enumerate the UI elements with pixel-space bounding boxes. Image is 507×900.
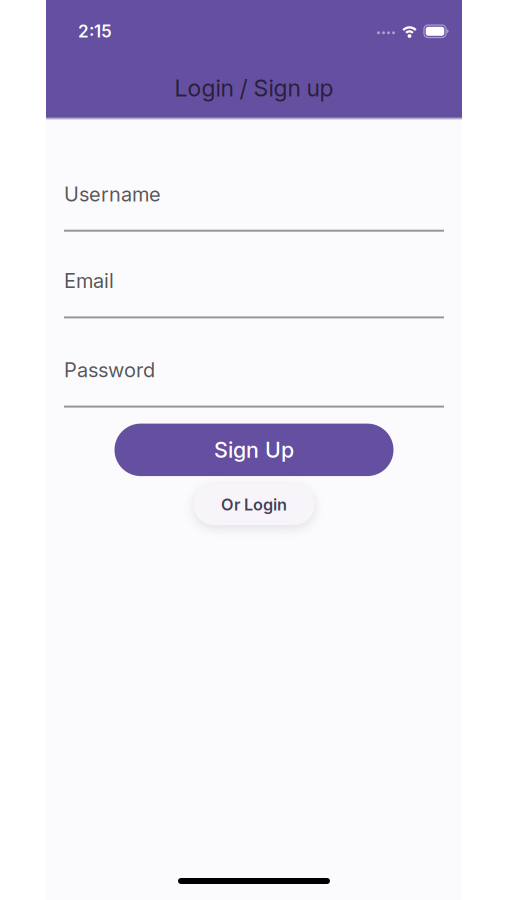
button[interactable]: Sign Up <box>114 424 393 476</box>
button[interactable]: Email <box>64 269 444 318</box>
button[interactable]: Username <box>64 182 444 232</box>
staticText: Email <box>64 269 114 293</box>
button[interactable]: Or Login <box>193 484 314 525</box>
staticText: Password <box>64 358 155 382</box>
staticText: Sign Up <box>214 437 294 463</box>
staticText: Username <box>64 182 161 206</box>
button[interactable]: Password <box>64 358 444 408</box>
staticText: Login / Sign up <box>174 74 333 102</box>
staticText: Or Login <box>221 495 287 514</box>
staticText: 2:15 <box>78 21 112 42</box>
